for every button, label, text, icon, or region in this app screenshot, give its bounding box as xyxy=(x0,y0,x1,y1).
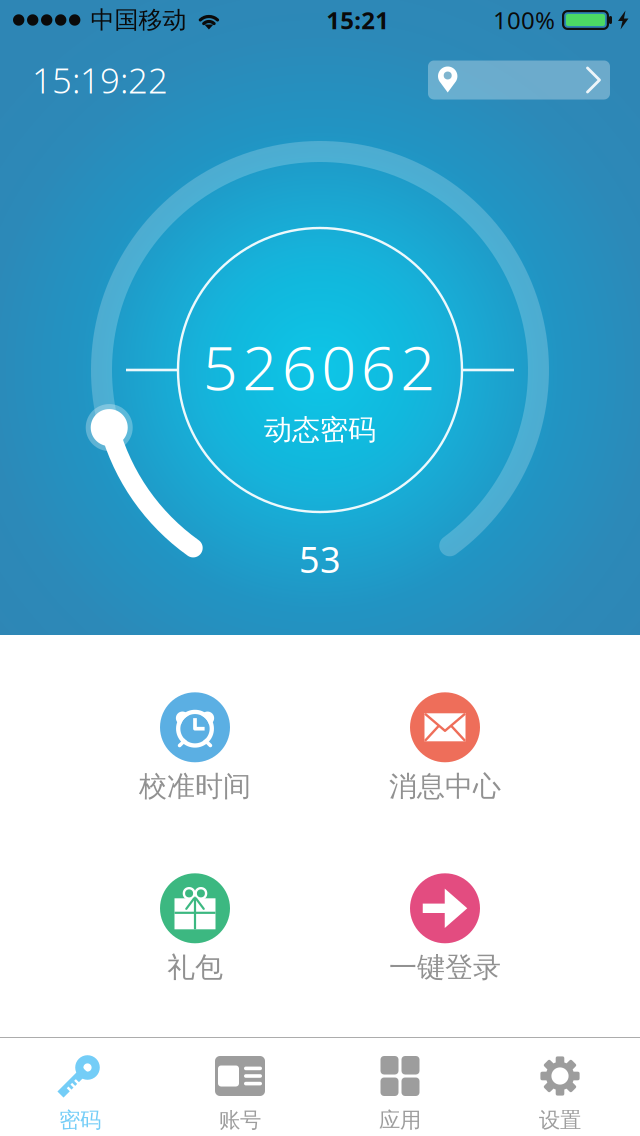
button[interactable]: 密码 xyxy=(0,1038,160,1136)
staticText: 礼包 xyxy=(167,950,223,985)
staticText: 应用 xyxy=(379,1107,421,1133)
staticText: 动态密码 xyxy=(264,413,376,447)
button[interactable]: 礼包 xyxy=(70,864,320,994)
button[interactable]: 消息中心 xyxy=(320,683,570,813)
staticText: 526062 xyxy=(203,326,435,407)
staticText: 15:19:22 xyxy=(32,57,168,103)
staticText: 密码 xyxy=(59,1107,101,1133)
staticText: 中国移动 xyxy=(90,5,186,35)
staticText: 100% xyxy=(493,4,555,36)
staticText: 校准时间 xyxy=(139,769,251,804)
button[interactable]: 校准时间 xyxy=(70,683,320,813)
staticText: 53 xyxy=(299,535,341,583)
staticText: 15:21 xyxy=(326,4,389,36)
button[interactable]: 应用 xyxy=(320,1038,480,1136)
staticText: 设置 xyxy=(539,1107,581,1133)
staticText: 一键登录 xyxy=(389,950,501,985)
button[interactable]: 账号 xyxy=(160,1038,320,1136)
button[interactable]: 一键登录 xyxy=(320,864,570,994)
button[interactable]: Location xyxy=(428,60,610,99)
button[interactable]: 设置 xyxy=(480,1038,640,1136)
staticText: 账号 xyxy=(219,1107,261,1133)
staticText: 消息中心 xyxy=(389,769,501,804)
